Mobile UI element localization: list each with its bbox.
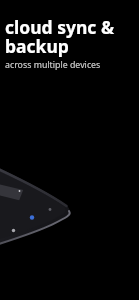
- staticText: cloud sync & backup: [5, 15, 115, 58]
- staticText: across multiple devices: [5, 59, 101, 71]
